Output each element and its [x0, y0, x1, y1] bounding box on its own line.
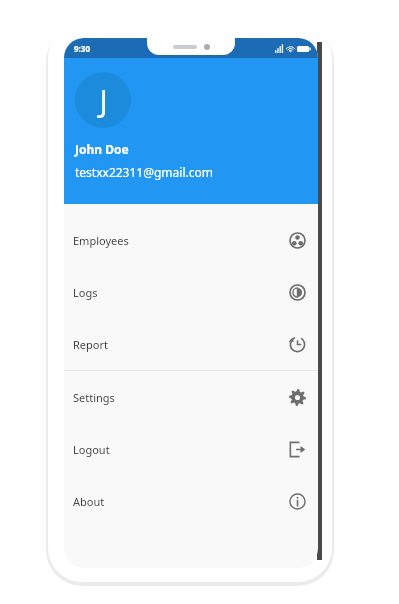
staticText: Logout	[73, 442, 110, 457]
staticText: testxx22311@gmail.com	[75, 164, 213, 180]
button[interactable]: About	[64, 475, 318, 527]
button[interactable]: Report	[64, 318, 318, 370]
staticText: Logs	[73, 285, 98, 300]
staticText: John Doe	[75, 141, 129, 157]
button[interactable]: Logs	[64, 266, 318, 318]
staticText: Report	[73, 337, 108, 352]
staticText: Employees	[73, 233, 129, 248]
button[interactable]: Logout	[64, 423, 318, 475]
button[interactable]: Settings	[64, 371, 318, 423]
staticText: 9:30	[74, 43, 90, 54]
staticText: About	[73, 494, 105, 509]
staticText: Settings	[73, 390, 115, 405]
button[interactable]: Employees	[64, 214, 318, 266]
staticText: J	[99, 80, 108, 121]
